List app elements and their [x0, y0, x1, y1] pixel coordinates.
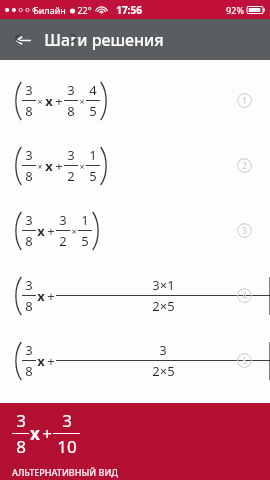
staticText: 3 — [159, 341, 167, 359]
staticText: + — [47, 287, 55, 305]
staticText: 92% — [226, 4, 244, 16]
staticText: × — [79, 95, 85, 107]
staticText: + — [55, 157, 63, 175]
button[interactable]: 3 — [0, 68, 270, 133]
staticText: × — [37, 95, 43, 107]
staticText: 3 — [67, 81, 75, 99]
staticText: x — [45, 92, 53, 110]
staticText: 3 — [25, 146, 33, 164]
staticText: x — [37, 287, 45, 305]
staticText: 3×1 — [152, 276, 175, 294]
staticText: 8 — [25, 362, 33, 380]
staticText: 1 — [89, 146, 97, 164]
staticText: 2 — [242, 160, 247, 171]
staticText: 3 — [59, 211, 67, 229]
staticText: 8 — [25, 102, 33, 120]
staticText: 3 — [67, 146, 75, 164]
staticText: x — [37, 222, 45, 240]
staticText: 5 — [81, 232, 89, 250]
staticText: + — [55, 92, 63, 110]
staticText: x — [30, 422, 40, 445]
staticText: 3 — [16, 409, 26, 432]
staticText: 1 — [242, 95, 247, 106]
staticText: 2 — [59, 232, 67, 250]
button[interactable]: 3 — [0, 263, 270, 328]
staticText: + — [47, 352, 55, 370]
staticText: × — [71, 225, 77, 237]
staticText: 22° — [77, 4, 92, 16]
staticText: 1 — [81, 211, 89, 229]
staticText: 3 — [62, 409, 72, 432]
staticText: 5 — [89, 167, 97, 185]
staticText: x — [45, 157, 53, 175]
staticText: x — [37, 352, 45, 370]
staticText: 3 — [25, 81, 33, 99]
staticText: + — [42, 422, 52, 445]
staticText: Билайн — [33, 4, 66, 16]
staticText: 2 — [67, 167, 75, 185]
staticText: + — [47, 222, 55, 240]
button[interactable]: 3 — [0, 198, 270, 263]
staticText: 8 — [25, 297, 33, 315]
staticText: АЛЬТЕРНАТИВНЫЙ ВИД — [12, 466, 118, 478]
staticText: 3 — [242, 225, 247, 236]
staticText: × — [37, 160, 43, 172]
staticText: 3 — [25, 341, 33, 359]
staticText: 8 — [16, 435, 26, 458]
staticText: 2×5 — [152, 362, 175, 380]
staticText: 17:56 — [116, 3, 142, 17]
button[interactable]: 3 — [0, 328, 270, 393]
staticText: 8 — [67, 102, 75, 120]
staticText: 4 — [89, 81, 97, 99]
staticText: 8 — [25, 232, 33, 250]
staticText: 3 — [25, 211, 33, 229]
staticText: 5 — [89, 102, 97, 120]
staticText: 2×5 — [152, 297, 175, 315]
staticText: 5 — [242, 355, 247, 366]
staticText: 3 — [25, 276, 33, 294]
staticText: Шаги решения — [44, 29, 164, 51]
staticText: 8 — [25, 167, 33, 185]
button[interactable]: 3 — [0, 403, 270, 480]
button[interactable]: Back — [9, 26, 37, 54]
staticText: 4 — [242, 290, 247, 301]
staticText: 10 — [57, 435, 77, 458]
button[interactable]: 3 — [0, 133, 270, 198]
staticText: × — [79, 160, 85, 172]
